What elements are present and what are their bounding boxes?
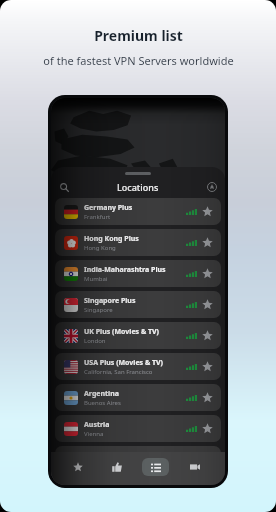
staticText: UK Plus (Movies & TV): [84, 327, 159, 337]
button[interactable]: Settings: [204, 179, 220, 195]
button[interactable]: India-Maharashtra Plus: [55, 260, 221, 287]
staticText: USA Plus (Movies & TV): [84, 358, 163, 368]
staticText: Germany Plus: [84, 203, 133, 213]
staticText: Mumbai: [84, 275, 108, 283]
button[interactable]: Hong Kong Plus: [55, 229, 221, 256]
staticText: Frankfurt: [84, 213, 111, 221]
button[interactable]: UK Plus (Movies & TV): [55, 322, 221, 349]
button[interactable]: Singapore Plus: [55, 291, 221, 318]
staticText: London: [84, 337, 106, 345]
staticText: Buenos Aires: [84, 399, 121, 407]
button[interactable]: Germany Plus: [55, 198, 221, 225]
button[interactable]: Austria: [55, 415, 221, 442]
staticText: Singapore: [84, 306, 113, 314]
staticText: Hong Kong: [84, 244, 116, 252]
staticText: AU Sydney: [84, 451, 121, 461]
staticText: Hong Kong Plus: [84, 234, 139, 244]
staticText: Argentina: [84, 389, 119, 399]
staticText: Vienna: [84, 430, 104, 438]
staticText: India-Maharashtra Plus: [84, 265, 166, 275]
button[interactable]: Favorites: [57, 452, 97, 485]
staticText: of the fastest VPN Servers worldwide: [43, 53, 234, 68]
button[interactable]: Streaming: [175, 452, 214, 485]
staticText: California, San Francisco: [84, 368, 153, 376]
staticText: Premium list: [94, 26, 183, 45]
button[interactable]: AU Sydney: [55, 446, 221, 473]
button[interactable]: Argentina: [55, 384, 221, 411]
staticText: Locations: [117, 181, 159, 193]
button[interactable]: Recommended: [97, 452, 136, 485]
button[interactable]: USA Plus (Movies & TV): [55, 353, 221, 380]
staticText: Singapore Plus: [84, 296, 136, 306]
staticText: Austria: [84, 420, 110, 430]
button[interactable]: Servers list: [136, 452, 175, 485]
button[interactable]: Search: [56, 179, 72, 195]
